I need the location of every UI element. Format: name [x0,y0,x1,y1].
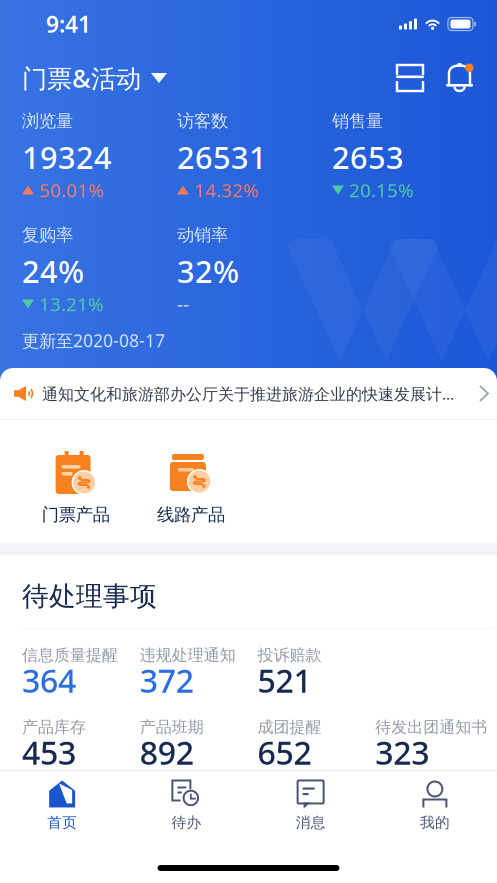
staticText: 待发出团通知书 [375,717,487,737]
staticText: 我的 [420,813,450,831]
staticText: 50.01% [39,178,104,202]
staticText: 违规处理通知 [140,645,236,665]
staticText: 364 [22,659,76,701]
staticText: 待处理事项 [22,580,157,613]
staticText: 待办 [171,813,201,831]
staticText: 复购率 [22,224,73,246]
staticText: 14.32% [194,178,259,202]
staticText: 门票产品 [42,504,110,525]
staticText: 372 [140,659,194,701]
staticText: 892 [140,731,194,773]
staticText: 访客数 [177,110,228,132]
staticText: 521 [257,659,311,701]
staticText: 首页 [47,813,77,831]
staticText: 13.21% [39,292,104,316]
button[interactable]: 待办 [124,776,248,831]
staticText: 2653 [332,137,404,177]
staticText: 32% [177,251,239,291]
staticText: 323 [375,731,429,773]
staticText: 9:41 [46,9,91,39]
staticText: 浏览量 [22,110,73,132]
button[interactable]: 产品班期 [140,717,258,767]
staticText: 更新至2020-08-17 [22,329,165,352]
button[interactable]: 首页 [0,776,124,831]
button[interactable]: 消息 [248,776,373,831]
button[interactable]: 产品库存 [22,717,140,767]
button[interactable]: Switch layout [395,62,425,94]
button[interactable]: Notifications [445,62,475,94]
staticText: 销售量 [332,110,383,132]
button[interactable]: 待发出团通知书 [375,717,493,767]
button[interactable]: 通知文化和旅游部办公厅关于推进旅游企业的快速发展计划… [0,368,497,419]
staticText: 投诉赔款 [257,645,321,665]
staticText: 453 [22,731,76,773]
staticText: 成团提醒 [257,717,321,737]
staticText: 通知文化和旅游部办公厅关于推进旅游企业的快速发展计划… [42,383,463,404]
button[interactable]: 成团提醒 [257,717,375,767]
staticText: 19324 [22,137,112,177]
staticText: 消息 [296,813,326,831]
button[interactable]: 投诉赔款 [257,645,375,695]
staticText: 动销率 [177,224,228,246]
staticText: 产品班期 [140,717,204,737]
button[interactable]: 门票&活动 [22,61,167,95]
button[interactable]: 信息质量提醒 [22,645,140,695]
staticText: 24% [22,251,84,291]
staticText: 20.15% [349,178,414,202]
staticText: 门票&活动 [22,61,141,95]
staticText: 产品库存 [22,717,86,737]
button[interactable]: 门票产品 [18,451,133,525]
staticText: 线路产品 [157,504,225,525]
staticText: 信息质量提醒 [22,645,118,665]
staticText: 26531 [177,137,267,177]
staticText: 652 [257,731,311,773]
button[interactable]: 线路产品 [133,451,248,525]
button[interactable]: 违规处理通知 [140,645,258,695]
staticText: -- [177,292,189,316]
button[interactable]: 我的 [373,776,497,831]
